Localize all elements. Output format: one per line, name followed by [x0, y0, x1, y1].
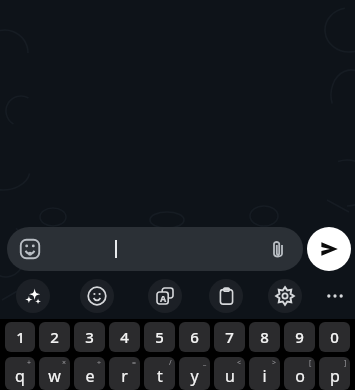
staticText: 9 [295, 327, 304, 347]
button[interactable]: t [144, 357, 175, 390]
button[interactable]: 6 [179, 322, 210, 352]
staticText: 5 [155, 327, 164, 347]
staticText: [ [309, 358, 312, 368]
button[interactable]: 3 [74, 322, 105, 352]
button[interactable]: p [319, 357, 350, 390]
staticText: u [225, 365, 235, 387]
staticText: < [237, 358, 242, 368]
button[interactable]: 9 [284, 322, 315, 352]
staticText: t [157, 365, 163, 387]
button[interactable]: Settings [268, 279, 302, 313]
button[interactable]: u [214, 357, 245, 390]
button[interactable]: 2 [39, 322, 70, 352]
button[interactable]: Attach [265, 236, 291, 262]
button[interactable]: w [39, 357, 70, 390]
staticText: o [295, 365, 305, 387]
button[interactable]: y [179, 357, 210, 390]
button[interactable]: q [5, 357, 35, 390]
staticText: A [160, 292, 167, 304]
button[interactable]: Stickers [7, 227, 303, 271]
button[interactable]: e [74, 357, 105, 390]
staticText: w [48, 365, 61, 387]
staticText: × [62, 358, 67, 368]
button[interactable]: Stickers [17, 236, 43, 262]
button[interactable]: 1 [5, 322, 35, 352]
button[interactable]: r [109, 357, 140, 390]
button[interactable]: Emoji [80, 279, 114, 313]
staticText: + [27, 358, 32, 368]
button[interactable]: 8 [249, 322, 280, 352]
button[interactable]: 5 [144, 322, 175, 352]
staticText: i [262, 365, 267, 387]
staticText: r [121, 365, 128, 387]
staticText: = [132, 358, 137, 368]
staticText: q [15, 365, 25, 387]
staticText: / [169, 358, 172, 368]
button[interactable]: Magic compose [16, 279, 50, 313]
staticText: 2 [50, 327, 59, 347]
staticText: y [190, 365, 199, 387]
staticText: ÷ [97, 358, 102, 368]
button[interactable]: 0 [319, 322, 350, 352]
button[interactable]: i [249, 357, 280, 390]
staticText: 3 [85, 327, 94, 347]
staticText: 6 [190, 327, 199, 347]
button[interactable]: Clipboard [209, 279, 243, 313]
staticText: e [85, 365, 95, 387]
button[interactable]: o [284, 357, 315, 390]
staticText: 7 [225, 327, 234, 347]
staticText: p [330, 365, 340, 387]
button[interactable]: Translate [148, 279, 182, 313]
staticText: > [272, 358, 277, 368]
staticText: _ [203, 358, 207, 368]
button[interactable]: 4 [109, 322, 140, 352]
staticText: 4 [120, 327, 129, 347]
staticText: 0 [330, 327, 339, 347]
button[interactable]: 7 [214, 322, 245, 352]
staticText: ] [344, 358, 347, 368]
staticText: 1 [16, 327, 25, 347]
button[interactable]: More options [318, 279, 352, 313]
staticText: 8 [260, 327, 269, 347]
button[interactable]: Send [307, 227, 351, 271]
